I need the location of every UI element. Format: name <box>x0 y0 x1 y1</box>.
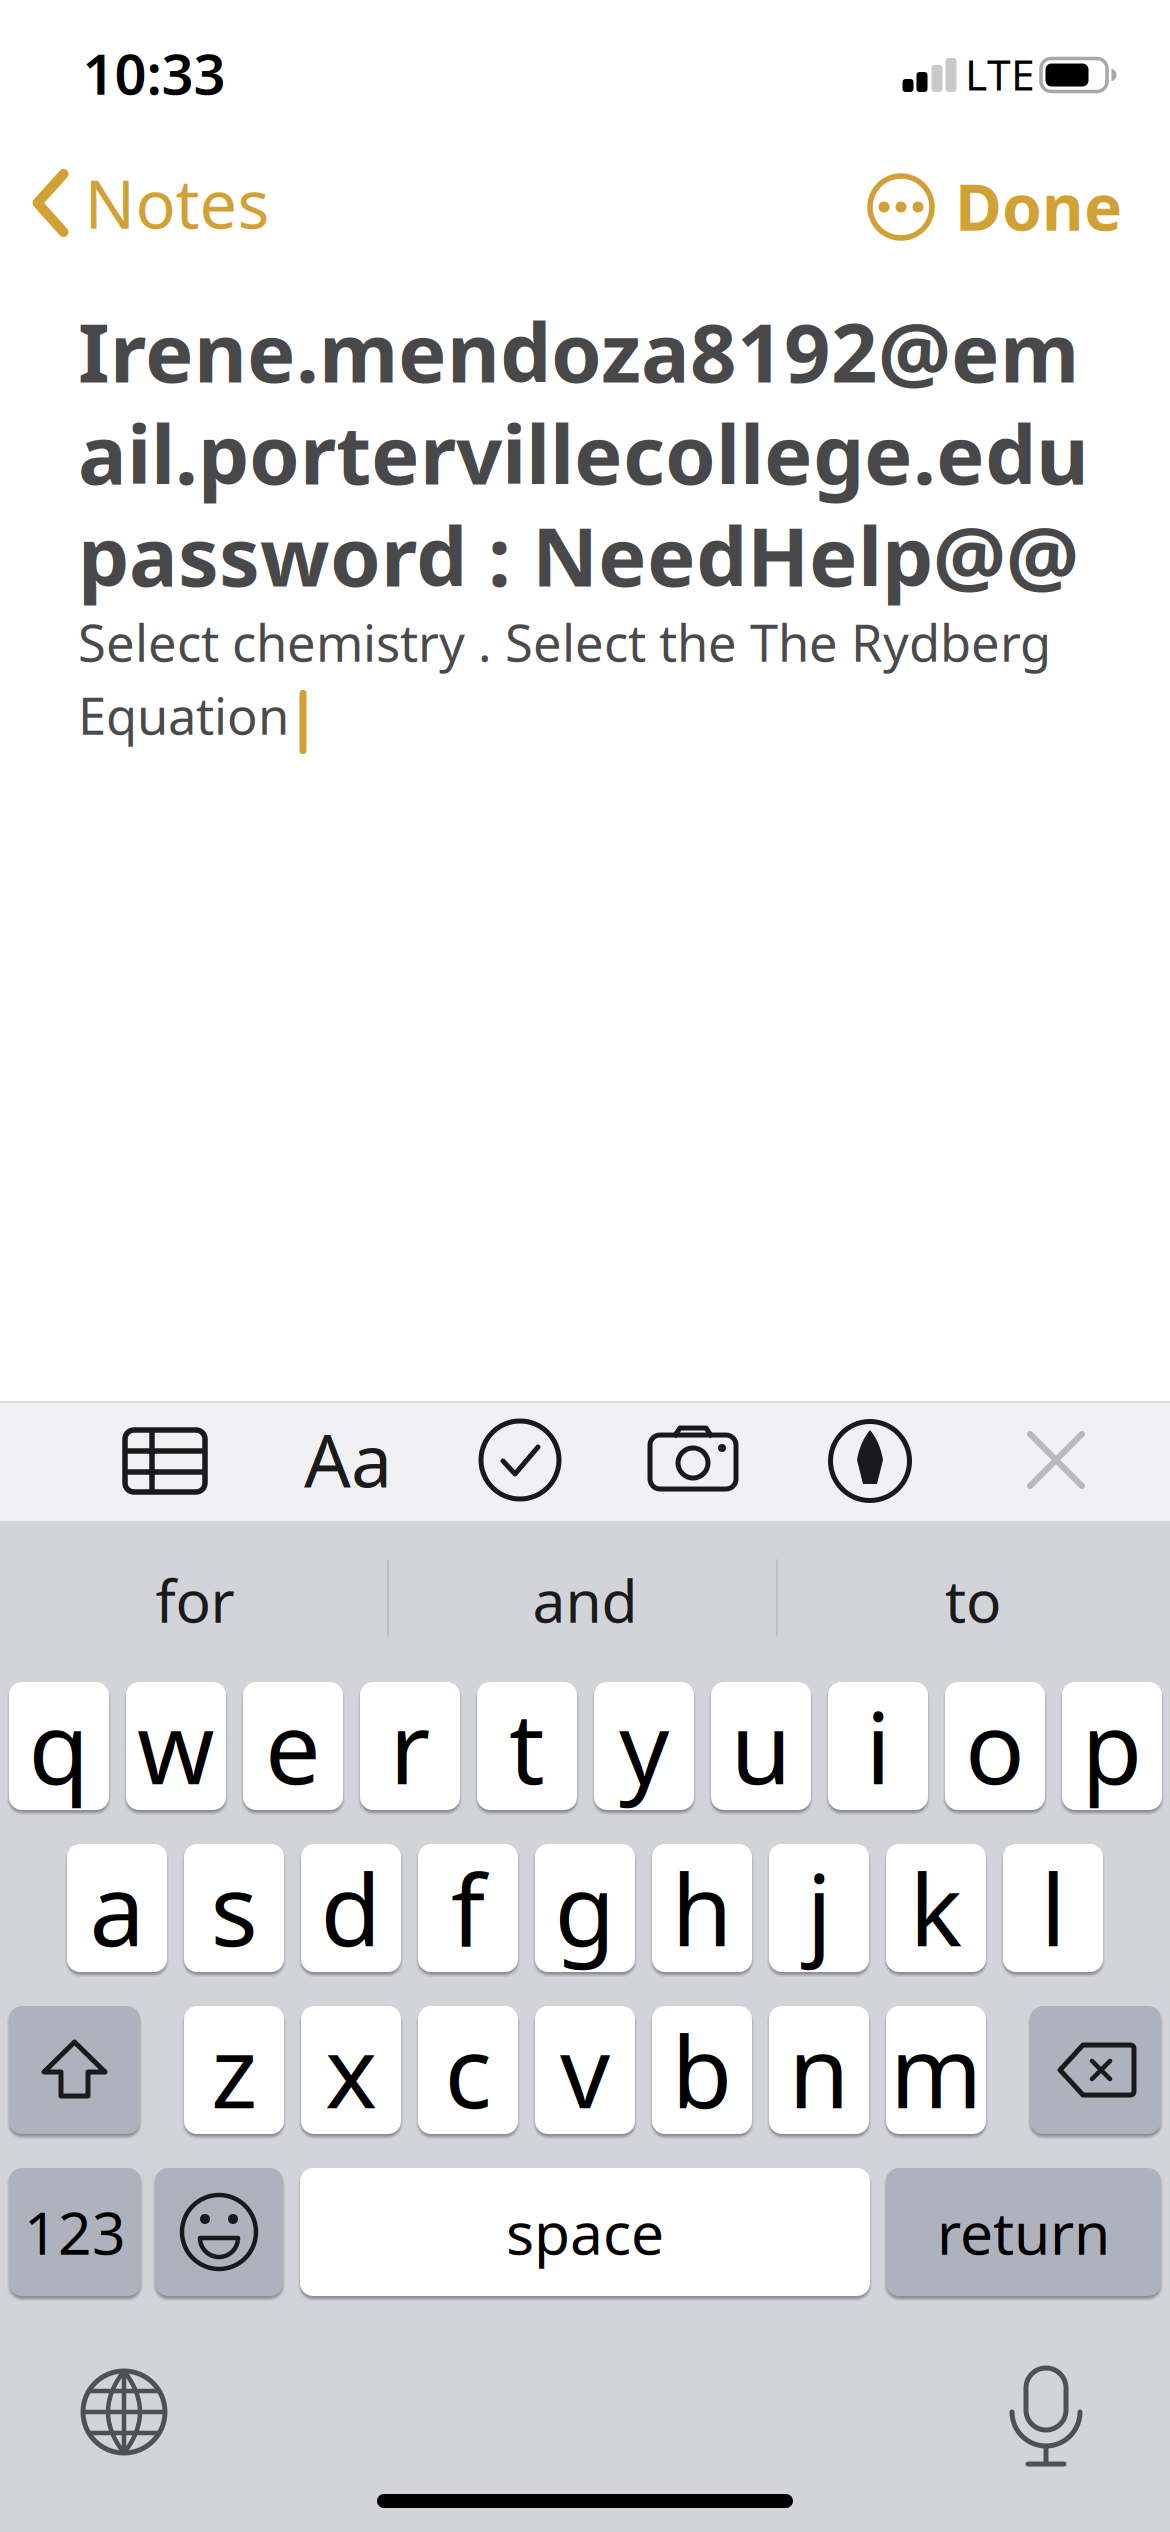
button[interactable] <box>1030 2006 1161 2134</box>
button[interactable] <box>1006 1410 1106 1510</box>
staticText: e <box>265 1680 321 1811</box>
staticText: return <box>937 2193 1110 2271</box>
button[interactable] <box>996 2356 1096 2476</box>
staticText: r <box>389 1680 430 1811</box>
staticText: h <box>671 1842 732 1973</box>
button[interactable]: a <box>67 1844 167 1972</box>
staticText: Notes <box>84 159 269 247</box>
button[interactable]: and <box>395 1535 775 1665</box>
button[interactable]: t <box>477 1682 577 1810</box>
button[interactable]: k <box>886 1844 986 1972</box>
staticText: Done <box>955 163 1122 248</box>
button[interactable]: g <box>535 1844 635 1972</box>
staticText: a <box>89 1842 144 1973</box>
button[interactable]: u <box>711 1682 811 1810</box>
button[interactable]: Done <box>902 156 1122 256</box>
button[interactable]: Notes <box>36 158 269 248</box>
staticText: Irene.mendoza8192@em <box>78 297 1079 405</box>
staticText: to <box>945 1561 1001 1639</box>
button[interactable]: Aa <box>293 1409 403 1509</box>
button[interactable]: r <box>360 1682 460 1810</box>
staticText: t <box>509 1680 545 1811</box>
button[interactable]: m <box>886 2006 986 2134</box>
button[interactable]: for <box>5 1535 385 1665</box>
button[interactable] <box>155 2168 283 2296</box>
staticText: for <box>155 1561 234 1639</box>
button[interactable]: n <box>769 2006 869 2134</box>
staticText: LTE <box>965 46 1035 102</box>
button[interactable]: c <box>418 2006 518 2134</box>
button[interactable] <box>825 1416 915 1506</box>
button[interactable] <box>9 2006 140 2134</box>
button[interactable]: x <box>301 2006 401 2134</box>
button[interactable]: v <box>535 2006 635 2134</box>
button[interactable]: to <box>783 1535 1163 1665</box>
staticText: b <box>671 2004 732 2135</box>
button[interactable] <box>120 1416 210 1506</box>
staticText: ail.portervillecollege.edu <box>78 399 1089 507</box>
staticText: w <box>137 1680 215 1811</box>
staticText: Select chemistry . Select the The Rydber… <box>78 608 1051 676</box>
staticText: l <box>1040 1842 1065 1973</box>
staticText: k <box>909 1842 962 1973</box>
button[interactable]: y <box>594 1682 694 1810</box>
staticText: 10:33 <box>82 36 225 110</box>
staticText: z <box>211 2004 257 2135</box>
staticText: c <box>444 2004 491 2135</box>
staticText: f <box>451 1842 485 1973</box>
button[interactable]: w <box>126 1682 226 1810</box>
button[interactable]: e <box>243 1682 343 1810</box>
button[interactable]: f <box>418 1844 518 1972</box>
staticText: Equation <box>78 681 289 749</box>
staticText: p <box>1081 1680 1142 1811</box>
staticText: password : NeedHelp@@ <box>78 501 1079 609</box>
button[interactable]: l <box>1003 1844 1103 1972</box>
button[interactable]: space <box>300 2168 870 2296</box>
staticText: v <box>560 2004 610 2135</box>
button[interactable]: b <box>652 2006 752 2134</box>
staticText: i <box>865 1680 890 1811</box>
staticText: y <box>619 1680 669 1811</box>
button[interactable]: q <box>9 1682 109 1810</box>
staticText: u <box>730 1680 791 1811</box>
staticText: g <box>554 1842 615 1973</box>
staticText: and <box>532 1561 637 1639</box>
staticText: j <box>806 1842 831 1973</box>
staticText: Aa <box>304 1410 392 1508</box>
staticText: 123 <box>24 2193 126 2271</box>
button[interactable]: s <box>184 1844 284 1972</box>
button[interactable] <box>74 2362 174 2462</box>
button[interactable]: z <box>184 2006 284 2134</box>
button[interactable]: j <box>769 1844 869 1972</box>
staticText: x <box>325 2004 377 2135</box>
button[interactable]: o <box>945 1682 1045 1810</box>
staticText: m <box>890 2004 982 2135</box>
button[interactable]: d <box>301 1844 401 1972</box>
button[interactable]: h <box>652 1844 752 1972</box>
staticText: q <box>28 1680 89 1811</box>
staticText: n <box>788 2004 849 2135</box>
button[interactable]: p <box>1062 1682 1162 1810</box>
button[interactable]: return <box>886 2168 1161 2296</box>
button[interactable]: 123 <box>9 2168 141 2296</box>
button[interactable]: i <box>828 1682 928 1810</box>
button[interactable] <box>649 1423 739 1503</box>
button[interactable] <box>475 1415 565 1505</box>
staticText: o <box>965 1680 1025 1811</box>
staticText: space <box>506 2193 664 2271</box>
staticText: s <box>210 1842 257 1973</box>
button[interactable] <box>866 172 936 242</box>
staticText: d <box>320 1842 381 1973</box>
